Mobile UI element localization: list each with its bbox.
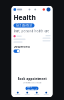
button[interactable]: Home [13,8,22,11]
button[interactable]: Get started [25,87,38,90]
button[interactable]: Get started [13,23,34,28]
staticText: Smart, personal health care [13,30,49,33]
staticText: Health [13,13,35,22]
button[interactable]: Toggle documents [13,49,20,53]
staticText: Get started [16,24,32,27]
button[interactable]: Menu [34,9,36,10]
staticText: Book appointment [17,77,46,81]
staticText: Documents [13,45,29,48]
staticText: Get started [27,85,37,92]
button[interactable]: Profile [46,7,50,11]
button[interactable]: Notifications [43,8,45,11]
staticText: Care that fits your schedule [22,82,41,84]
